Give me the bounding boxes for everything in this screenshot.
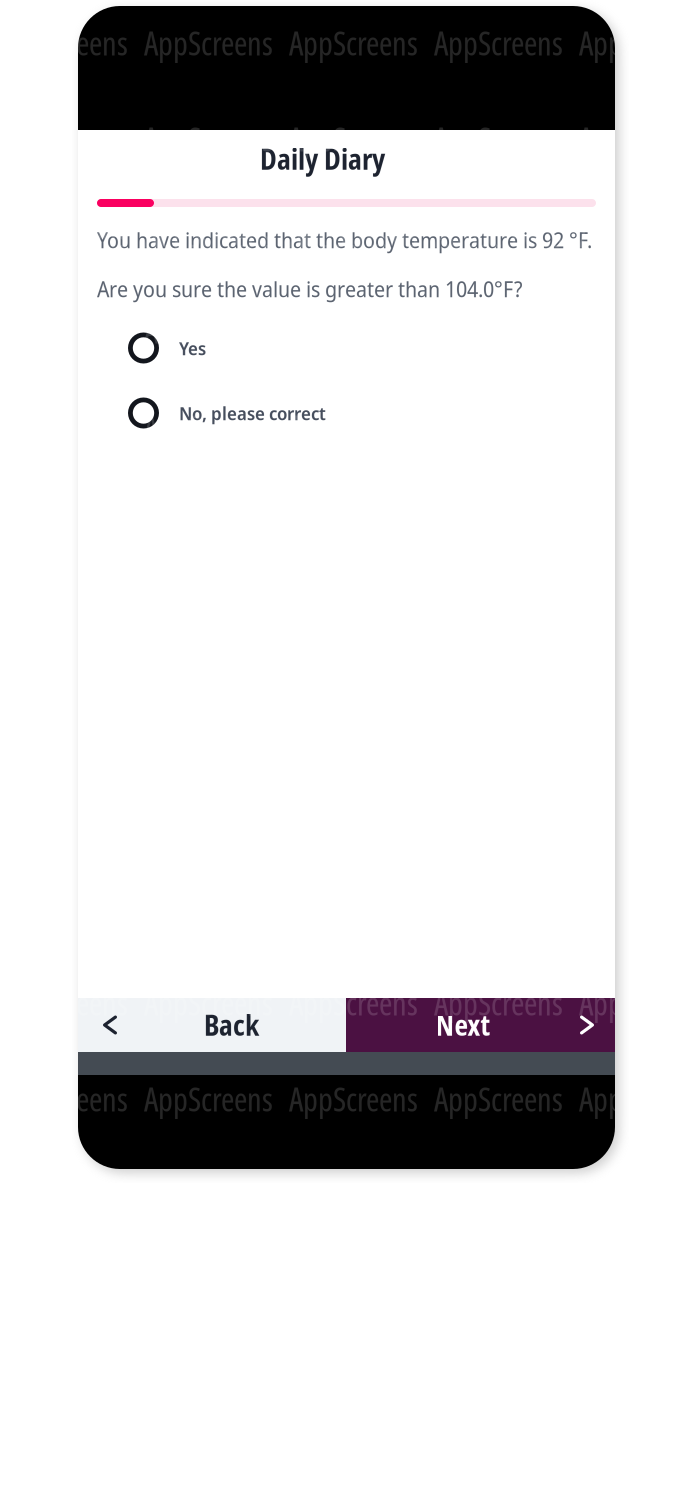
staticText: AppScreens [144, 1077, 273, 1121]
staticText: AppScreens [0, 213, 128, 257]
staticText: AppScreens [289, 981, 418, 1025]
staticText: AppScreens [579, 597, 693, 641]
staticText: AppScreens [434, 213, 563, 257]
staticText: AppScreens [579, 981, 693, 1025]
staticText: AppScreens [144, 309, 273, 353]
staticText: Back [204, 1006, 259, 1044]
staticText: AppScreens [0, 981, 128, 1025]
staticText: AppScreens [289, 213, 418, 257]
staticText: AppScreens [579, 789, 693, 833]
button[interactable]: No, please correct [78, 391, 615, 435]
staticText: AppScreens [434, 21, 563, 65]
staticText: AppScreens [579, 501, 693, 545]
staticText: AppScreens [144, 21, 273, 65]
staticText: AppScreens [579, 693, 693, 737]
staticText: AppScreens [579, 1077, 693, 1121]
staticText: AppScreens [579, 117, 693, 161]
staticText: AppScreens [0, 21, 128, 65]
button[interactable]: Yes [78, 326, 615, 370]
staticText: AppScreens [434, 1077, 563, 1121]
staticText: AppScreens [579, 405, 693, 449]
staticText: AppScreens [579, 213, 693, 257]
staticText: Next [435, 1006, 490, 1044]
staticText: AppScreens [144, 981, 273, 1025]
staticText: AppScreens [144, 117, 273, 161]
staticText: AppScreens [579, 309, 693, 353]
staticText: AppScreens [579, 885, 693, 929]
staticText: Yes [179, 335, 206, 361]
staticText: AppScreens [289, 405, 418, 449]
staticText: AppScreens [289, 1077, 418, 1121]
staticText: You have indicated that the body tempera… [97, 225, 592, 255]
button[interactable]: Next [346, 998, 615, 1052]
staticText: AppScreens [289, 117, 418, 161]
staticText: AppScreens [144, 405, 273, 449]
staticText: AppScreens [289, 21, 418, 65]
staticText: AppScreens [0, 117, 128, 161]
button[interactable]: Back [78, 998, 346, 1052]
staticText: AppScreens [434, 981, 563, 1025]
staticText: AppScreens [144, 213, 273, 257]
staticText: Daily Diary [260, 140, 385, 178]
staticText: AppScreens [434, 117, 563, 161]
staticText: No, please correct [179, 400, 326, 426]
staticText: AppScreens [579, 21, 693, 65]
staticText: Are you sure the value is greater than 1… [97, 274, 523, 304]
staticText: AppScreens [0, 1077, 128, 1121]
